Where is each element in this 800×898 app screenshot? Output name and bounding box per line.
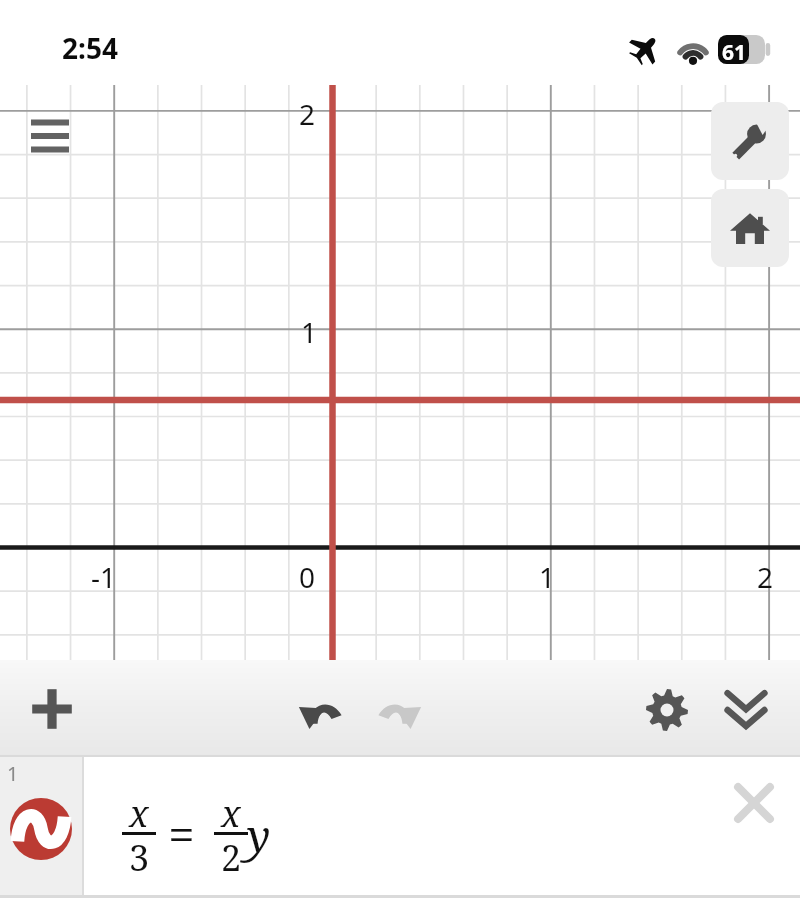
staticText: -1 xyxy=(91,558,117,596)
staticText: 3 xyxy=(129,833,150,882)
staticText: 1 xyxy=(301,313,318,351)
button[interactable]: Home view xyxy=(711,189,789,267)
staticText: 2:54 xyxy=(62,29,118,67)
staticText: 2 xyxy=(221,833,242,882)
staticText: y xyxy=(247,805,271,865)
staticText: 1 xyxy=(7,760,19,787)
button[interactable]: Undo xyxy=(286,676,354,744)
staticText: 2 xyxy=(757,558,774,596)
staticText: 1 xyxy=(539,558,556,596)
button[interactable]: Redo xyxy=(366,676,434,744)
staticText: 2 xyxy=(299,95,316,133)
staticText: 61 xyxy=(722,38,747,67)
button[interactable]: Toggle graph visibility xyxy=(0,757,82,898)
staticText: x xyxy=(129,789,149,838)
staticText: x xyxy=(221,789,241,838)
button[interactable]: Menu xyxy=(20,110,80,162)
button[interactable]: Toggle graph visibility xyxy=(0,757,800,898)
button[interactable]: Add expression xyxy=(17,674,87,744)
staticText: = xyxy=(168,801,195,866)
button[interactable]: Keyboard settings xyxy=(633,676,701,744)
button[interactable]: Graph settings xyxy=(711,102,789,180)
staticText: 0 xyxy=(299,558,316,596)
button[interactable]: Delete expression xyxy=(716,765,792,841)
button[interactable]: Hide keyboard xyxy=(712,676,780,744)
